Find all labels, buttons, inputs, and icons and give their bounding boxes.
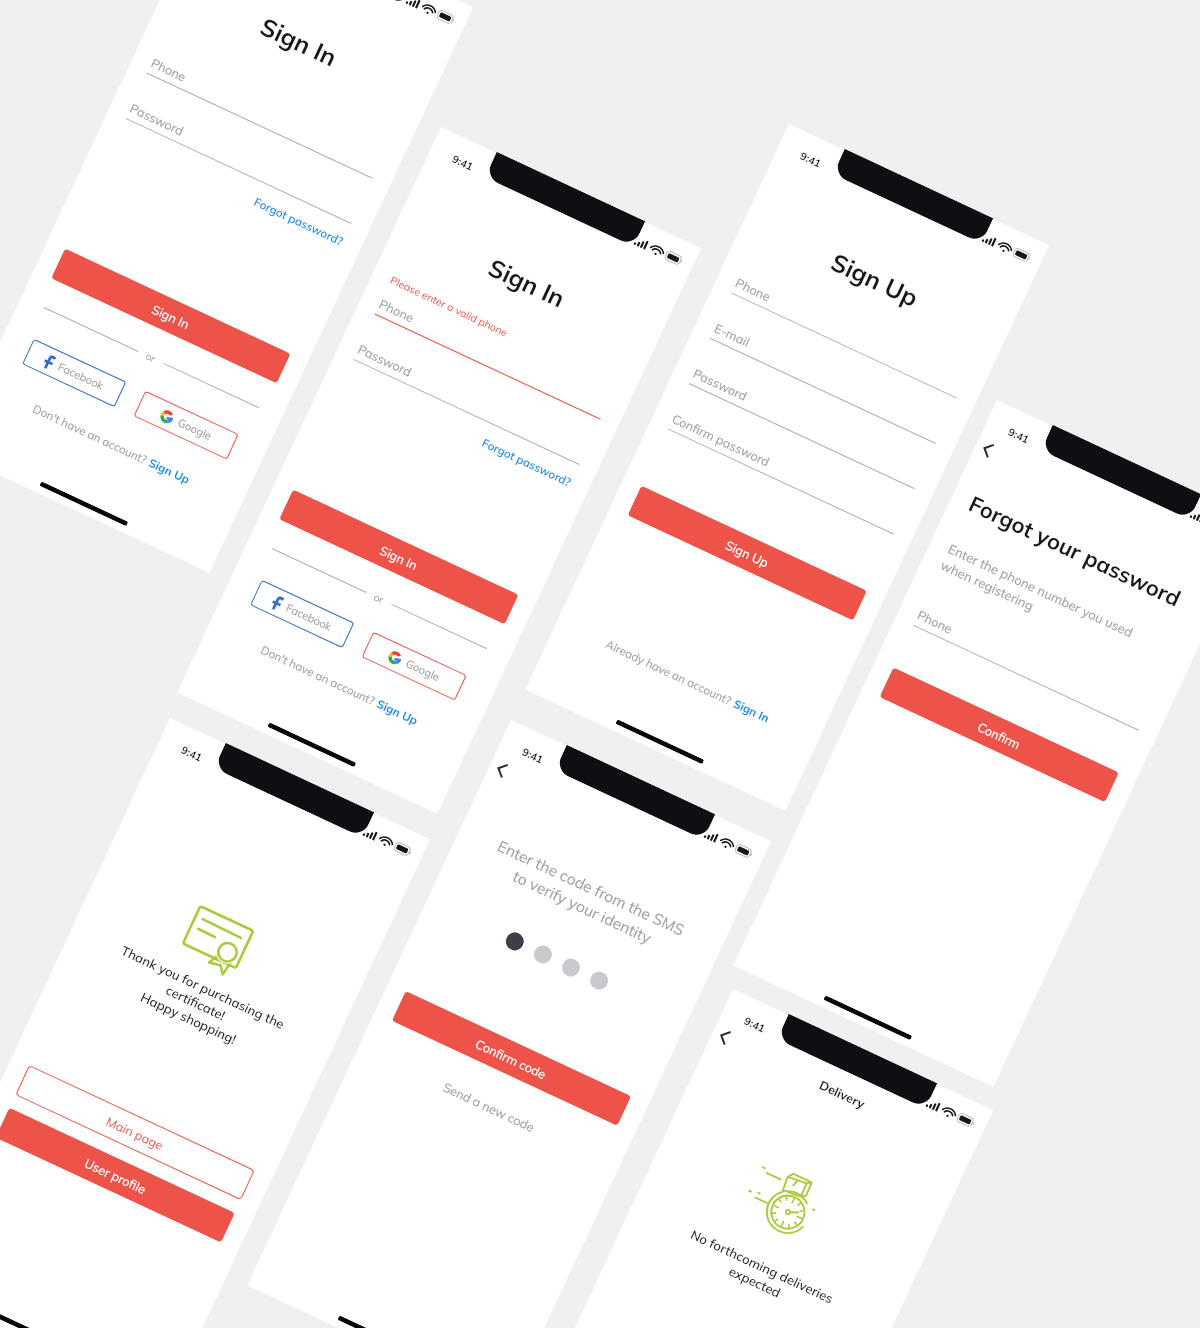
staticText: Sign In <box>150 301 193 332</box>
staticText: Phone <box>149 54 189 84</box>
staticText: No forthcoming deliveries expected <box>658 1215 859 1328</box>
staticText: Forgot password? <box>480 435 574 489</box>
staticText: Sign In <box>390 208 663 357</box>
staticText: Phone <box>377 295 417 325</box>
staticText: Forgot your password <box>964 490 1200 620</box>
staticText: Delivery <box>709 1026 976 1162</box>
staticText: Confirm password <box>670 410 772 470</box>
staticText: 9:41 <box>798 149 824 170</box>
button[interactable]: Facebook <box>22 339 126 407</box>
staticText: Sign In <box>378 542 421 573</box>
staticText: Phone <box>915 606 955 637</box>
staticText: Sign Up <box>738 205 1011 354</box>
staticText: Thank you for purchasing the certificate… <box>91 936 300 1069</box>
button[interactable]: Confirm code <box>392 991 631 1126</box>
staticText: E-mail <box>712 320 753 350</box>
button[interactable]: User profile <box>0 1108 235 1243</box>
staticText: Facebook <box>284 600 334 634</box>
button[interactable]: Facebook <box>250 580 354 648</box>
button[interactable]: Confirm <box>879 667 1119 802</box>
button[interactable]: Sign In <box>732 696 772 724</box>
button[interactable]: Sign In <box>51 248 291 383</box>
button[interactable]: Sign Up <box>147 455 193 486</box>
staticText: Password <box>127 100 187 139</box>
staticText: Sign In <box>162 0 435 116</box>
staticText: 9:41 <box>450 152 476 173</box>
button[interactable]: Back <box>972 435 1002 464</box>
staticText: Don't have an account? <box>31 401 153 468</box>
staticText: Please enter a valid phone <box>388 273 510 339</box>
staticText: Confirm code <box>473 1035 549 1082</box>
button[interactable]: Google <box>133 391 239 460</box>
staticText: Sign Up <box>147 455 193 486</box>
staticText: Forgot password? <box>252 194 346 248</box>
staticText: Google <box>175 415 214 443</box>
staticText: Enter the phone number you used when reg… <box>938 540 1178 676</box>
staticText: Sign Up <box>375 696 421 727</box>
button[interactable]: Sign Up <box>375 696 421 727</box>
button[interactable]: Forgot password? <box>480 435 574 489</box>
button[interactable]: Sign In <box>279 489 519 624</box>
button[interactable]: Google <box>361 632 467 701</box>
button[interactable]: Send a new code <box>441 1079 538 1135</box>
staticText: or <box>144 349 158 365</box>
button[interactable]: Forgot password? <box>252 194 346 248</box>
button[interactable]: Back <box>486 755 516 784</box>
staticText: Enter the code from the SMS to verify yo… <box>465 826 708 968</box>
staticText: Already have an account? <box>604 636 737 708</box>
staticText: Phone <box>733 274 773 304</box>
staticText: Password <box>355 341 415 380</box>
staticText: Facebook <box>56 359 106 393</box>
staticText: Password <box>691 365 750 404</box>
button[interactable]: Back <box>709 1022 739 1051</box>
staticText: Don't have an account? <box>259 642 381 709</box>
staticText: Sign Up <box>723 537 772 571</box>
button[interactable]: Main page <box>15 1065 255 1200</box>
staticText: Main page <box>104 1113 167 1154</box>
button[interactable]: Sign Up <box>627 485 867 621</box>
staticText: or <box>372 590 386 606</box>
staticText: Send a new code <box>441 1079 538 1135</box>
staticText: Google <box>403 656 442 684</box>
staticText: Sign In <box>732 696 772 724</box>
staticText: 9:41 <box>179 743 205 764</box>
staticText: User profile <box>82 1155 149 1197</box>
staticText: Confirm <box>975 718 1024 752</box>
staticText: 9:41 <box>520 745 546 766</box>
staticText: 9:41 <box>1006 425 1032 446</box>
staticText: 9:41 <box>742 1014 768 1035</box>
